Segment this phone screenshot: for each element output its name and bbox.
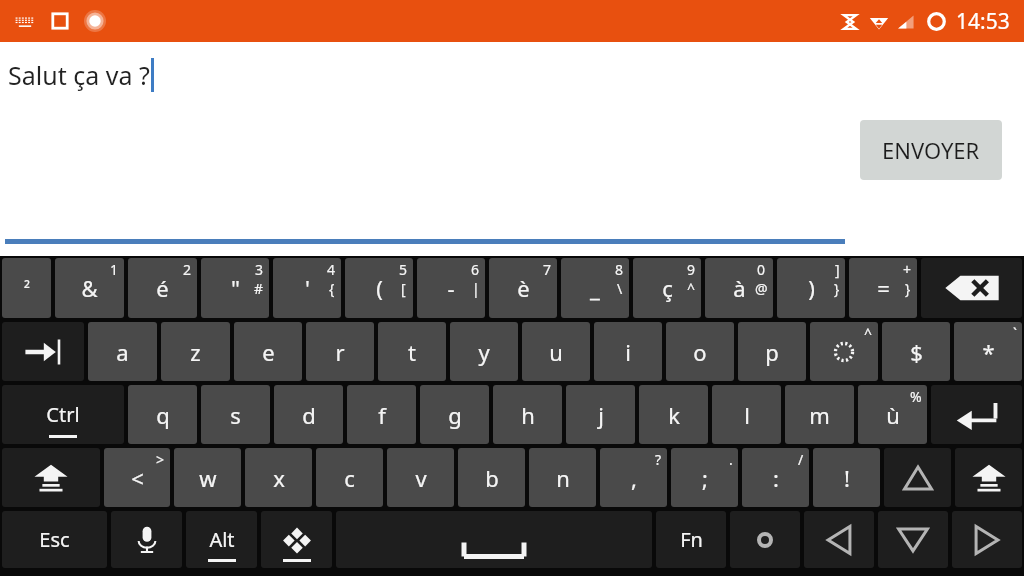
staticText: Fn [680,526,703,553]
staticText: > [156,450,165,469]
button[interactable]: _ [561,258,629,318]
button[interactable]: m [785,385,854,444]
staticText: è [517,273,530,303]
button[interactable]: ) [777,258,845,318]
staticText: ! [844,463,850,493]
button[interactable]: r [306,322,374,381]
staticText: | [472,279,480,298]
button[interactable]: d [274,385,343,444]
button[interactable]: ( [345,258,413,318]
staticText: " [231,273,240,303]
button[interactable]: j [566,385,635,444]
staticText: 2 [183,260,192,279]
button[interactable]: g [420,385,489,444]
staticText: @ [755,279,768,298]
button[interactable]: Esc [2,511,107,568]
button[interactable]: - [417,258,485,318]
button[interactable]: z [161,322,230,381]
staticText: ) [808,273,815,303]
staticText: a [116,337,129,367]
button[interactable]: ç [633,258,701,318]
button[interactable]: q [128,385,197,444]
button[interactable]: ; [671,448,738,507]
button[interactable]: p [738,322,806,381]
button[interactable]: triLeft [804,511,874,568]
button[interactable]: c [316,448,383,507]
button[interactable]: x [245,448,312,507]
button[interactable]: h [493,385,562,444]
button[interactable]: triRight [952,511,1022,568]
staticText: < [131,463,144,493]
button[interactable]: ! [813,448,880,507]
button[interactable]: : [742,448,809,507]
staticText: 8 [615,260,624,279]
staticText: m [809,400,830,430]
button[interactable]: t [378,322,446,381]
button[interactable]: ² [2,258,51,318]
staticText: t [408,337,416,367]
button[interactable]: à [705,258,773,318]
staticText: ù [886,400,900,430]
button[interactable]: , [600,448,667,507]
button[interactable]: enter [931,385,1022,444]
staticText: i [625,337,631,367]
button[interactable]: * [954,322,1022,381]
button[interactable]: mic [111,511,182,568]
staticText: e [262,337,275,367]
other: Recents [50,11,70,31]
button[interactable]: triDown [878,511,948,568]
button[interactable]: bksp [921,258,1022,318]
button[interactable]: v [387,448,454,507]
staticText: é [156,273,169,303]
button[interactable]: diamond [261,511,332,568]
staticText: p [765,337,779,367]
staticText: , [631,463,637,493]
staticText: } [834,279,840,298]
staticText: Salut ça va ? [8,58,150,92]
staticText: ] [835,260,840,279]
button[interactable]: tab [2,322,84,381]
button[interactable]: & [55,258,124,318]
staticText: y [478,337,490,367]
staticText: # [254,279,264,298]
button[interactable]: è [489,258,557,318]
button[interactable]: = [849,258,917,318]
button[interactable]: b [458,448,525,507]
button[interactable]: ù [858,385,927,444]
button[interactable]: a [88,322,157,381]
staticText: n [556,463,570,493]
staticText: q [156,400,170,430]
button[interactable]: triup [884,448,951,507]
button[interactable]: l [712,385,781,444]
staticText: \ [617,279,623,298]
button[interactable]: space [336,511,652,568]
staticText: ^ [864,324,873,343]
button[interactable]: " [201,258,269,318]
button[interactable]: o [666,322,734,381]
button[interactable]: shift [955,448,1022,507]
button[interactable]: é [128,258,197,318]
button[interactable]: k [639,385,708,444]
staticText: ENVOYER [882,135,980,165]
button[interactable]: Ctrl [2,385,124,444]
button[interactable]: $ [882,322,950,381]
staticText: - [447,273,455,303]
button[interactable]: circle [730,511,800,568]
button[interactable]: Fn [656,511,726,568]
button[interactable]: n [529,448,596,507]
button[interactable]: s [201,385,270,444]
button[interactable]: < [104,448,170,507]
button[interactable]: u [522,322,590,381]
button[interactable]: ' [273,258,341,318]
button[interactable]: y [450,322,518,381]
button[interactable]: dotcirc [810,322,878,381]
button[interactable]: i [594,322,662,381]
button[interactable]: f [347,385,416,444]
button[interactable]: ENVOYER [860,120,1002,180]
staticText: 0 [757,260,766,279]
button[interactable]: e [234,322,302,381]
staticText: ; [702,463,708,493]
button[interactable]: w [174,448,241,507]
button[interactable]: Alt [186,511,257,568]
button[interactable]: shift [2,448,100,507]
